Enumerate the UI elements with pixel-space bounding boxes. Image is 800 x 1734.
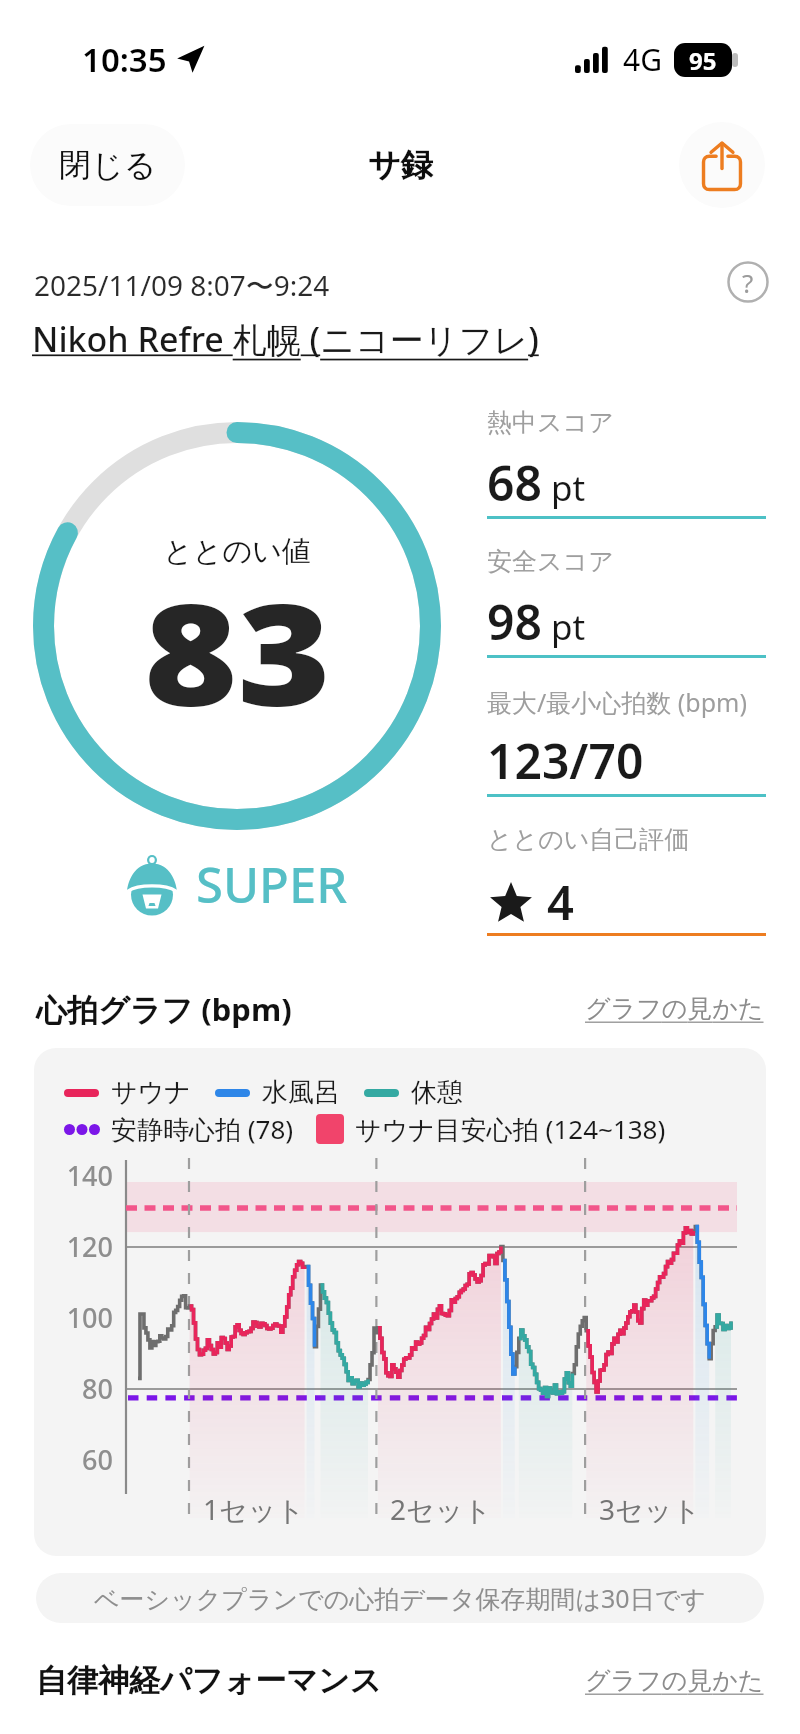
- staticText: 安静時心拍 (78): [111, 1111, 294, 1147]
- staticText: 自律神経パフォーマンス: [36, 1661, 382, 1700]
- staticText: 68: [487, 450, 542, 515]
- staticText: 3セット: [599, 1490, 701, 1528]
- staticText: グラフの見かた: [585, 993, 764, 1024]
- staticText: 98: [487, 589, 542, 654]
- staticText: SUPER: [196, 851, 348, 918]
- staticText: 最大/最小心拍数 (bpm): [487, 685, 747, 719]
- staticText: 閉じる: [59, 145, 157, 185]
- button[interactable]: ヘルプ: [724, 258, 772, 306]
- staticText: ととのい自己評価: [487, 824, 690, 855]
- staticText: グラフの見かた: [585, 1665, 764, 1696]
- staticText: 10:35: [82, 37, 167, 82]
- staticText: 4G: [623, 39, 662, 80]
- staticText: サ録: [368, 145, 433, 185]
- staticText: 80: [34, 1370, 113, 1407]
- button[interactable]: 閉じる: [30, 124, 185, 206]
- staticText: 123/70: [487, 728, 644, 793]
- staticText: ?: [742, 265, 754, 300]
- staticText: Nikoh Refre 札幌 (ニコーリフレ): [32, 316, 539, 362]
- staticText: ととのい値: [33, 533, 441, 570]
- staticText: pt: [551, 464, 586, 512]
- button[interactable]: Nikoh Refre 札幌 (ニコーリフレ): [32, 310, 539, 368]
- staticText: ベーシックプランでの心拍データ保存期間は30日です: [94, 1581, 706, 1615]
- staticText: 熱中スコア: [487, 407, 614, 438]
- staticText: 83: [143, 556, 332, 747]
- button[interactable]: グラフの見かた: [581, 1659, 768, 1702]
- staticText: サウナ: [111, 1076, 191, 1109]
- staticText: 2セット: [390, 1490, 492, 1528]
- button[interactable]: 共有: [679, 122, 765, 208]
- staticText: 心拍グラフ (bpm): [36, 988, 292, 1030]
- staticText: 4: [547, 870, 574, 934]
- staticText: 95: [689, 44, 717, 77]
- staticText: pt: [551, 603, 586, 651]
- button[interactable]: グラフの見かた: [581, 987, 768, 1030]
- staticText: 1セット: [203, 1490, 305, 1528]
- staticText: 安全スコア: [487, 546, 614, 577]
- staticText: サウナ目安心拍 (124~138): [355, 1111, 666, 1147]
- staticText: 休憩: [411, 1076, 463, 1109]
- staticText: 120: [34, 1228, 113, 1265]
- staticText: 2025/11/09 8:07〜9:24: [34, 266, 330, 304]
- staticText: 140: [34, 1157, 113, 1194]
- staticText: 水風呂: [262, 1076, 340, 1109]
- staticText: 100: [34, 1299, 113, 1336]
- staticText: 60: [34, 1441, 113, 1478]
